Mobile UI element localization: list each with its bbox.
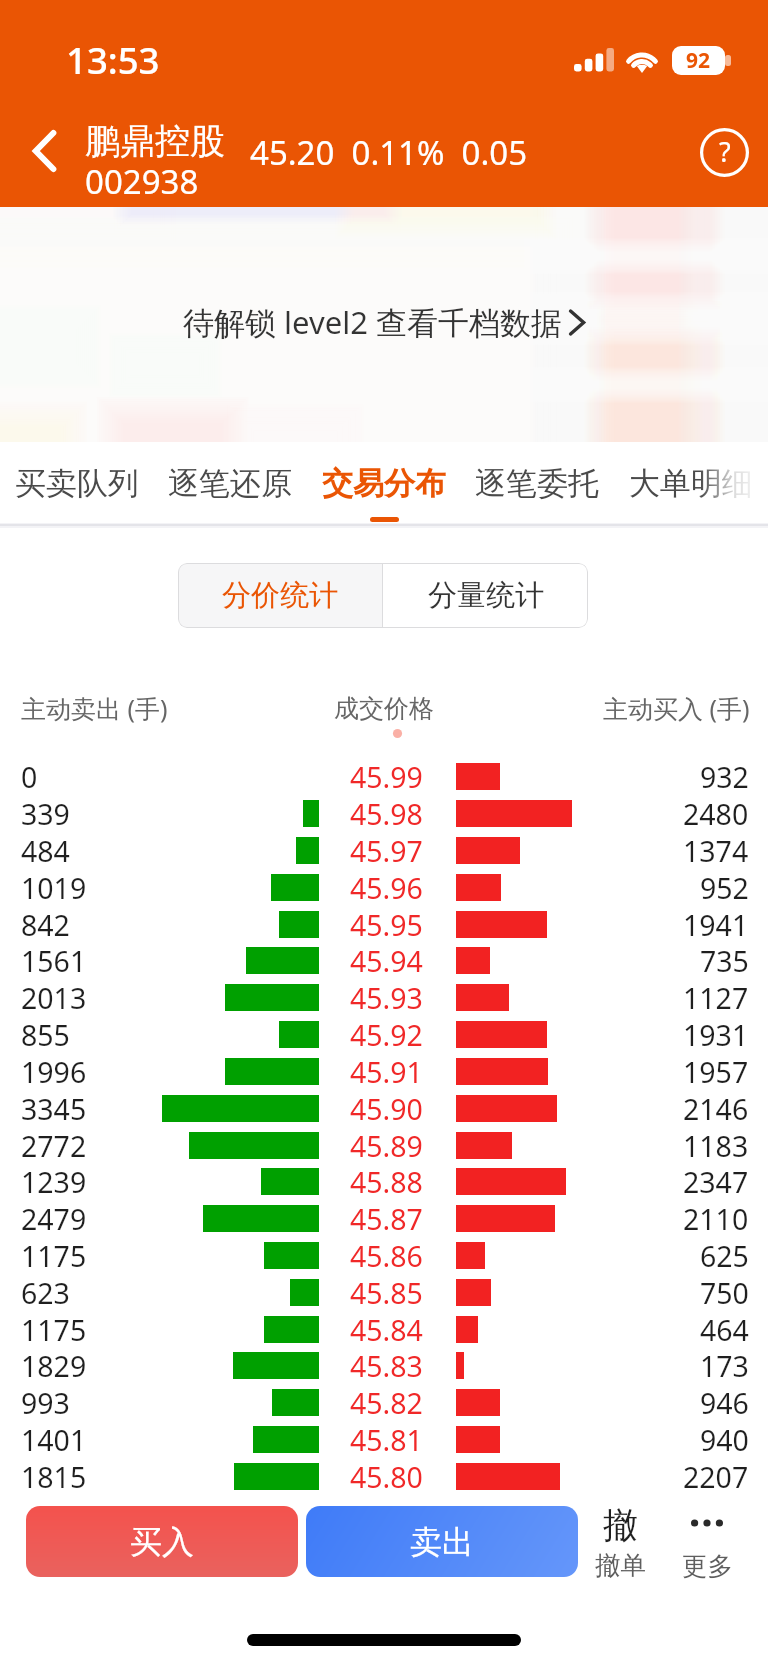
staticText: 1561 (21, 942, 87, 979)
staticText: 1401 (21, 1421, 87, 1458)
button[interactable]: Back (10, 116, 80, 186)
button[interactable]: 分量统计 (383, 563, 588, 628)
button[interactable]: 0 (0, 758, 768, 795)
staticText: 002938 (85, 159, 199, 204)
staticText: 45.88 (350, 1163, 423, 1200)
staticText: 45.95 (350, 906, 423, 943)
staticText: 92 (686, 46, 711, 75)
staticText: 993 (21, 1384, 70, 1421)
button[interactable]: 1401 (0, 1421, 768, 1458)
button[interactable]: 待解锁 level2 查看千档数据 (183, 301, 585, 343)
button[interactable]: 大单明细 (621, 442, 759, 530)
staticText: 932 (700, 758, 749, 795)
button[interactable]: 3345 (0, 1090, 768, 1127)
button[interactable]: 1561 (0, 942, 768, 979)
staticText: 1996 (21, 1053, 87, 1090)
staticText: 45.91 (350, 1053, 423, 1090)
button[interactable]: 484 (0, 832, 768, 869)
staticText: 待解锁 level2 查看千档数据 (183, 301, 562, 343)
staticText: 1941 (683, 906, 749, 943)
button[interactable]: 1996 (0, 1053, 768, 1090)
staticText: 45.93 (350, 979, 423, 1016)
button[interactable]: 623 (0, 1274, 768, 1311)
staticText: 45.89 (350, 1127, 423, 1164)
staticText: 2110 (683, 1200, 749, 1237)
button[interactable]: 1239 (0, 1163, 768, 1200)
button[interactable]: Help (693, 121, 756, 184)
staticText: 952 (700, 869, 749, 906)
button[interactable]: 842 (0, 906, 768, 943)
button[interactable]: 993 (0, 1384, 768, 1421)
staticText: 撤 (603, 1503, 638, 1547)
staticText: 1175 (21, 1237, 87, 1274)
button[interactable]: 2013 (0, 979, 768, 1016)
staticText: 买入 (130, 1522, 194, 1562)
button[interactable]: 分价统计 (178, 563, 382, 628)
staticText: 卖出 (410, 1522, 474, 1562)
button[interactable]: 1175 (0, 1237, 768, 1274)
button[interactable]: 2772 (0, 1127, 768, 1164)
staticText: 买卖队列 (15, 464, 139, 503)
staticText: 1374 (683, 832, 749, 869)
staticText: 45.96 (350, 869, 423, 906)
staticText: 1957 (683, 1053, 749, 1090)
button[interactable]: 339 (0, 795, 768, 832)
button[interactable]: 2479 (0, 1200, 768, 1237)
button[interactable]: 1829 (0, 1347, 768, 1384)
staticText: 45.98 (350, 795, 423, 832)
staticText: 1815 (21, 1458, 87, 1495)
staticText: 45.81 (350, 1421, 423, 1458)
staticText: 484 (21, 832, 70, 869)
button[interactable]: 1175 (0, 1311, 768, 1348)
staticText: 1019 (21, 869, 87, 906)
staticText: 1175 (21, 1311, 87, 1348)
staticText: 45.82 (350, 1384, 423, 1421)
staticText: 173 (700, 1347, 749, 1384)
staticText: 1239 (21, 1163, 87, 1200)
staticText: 2480 (683, 795, 749, 832)
button[interactable]: 撤 (575, 1503, 665, 1581)
button[interactable]: 买入 (26, 1506, 298, 1577)
button[interactable]: 逐笔委托 (467, 442, 605, 530)
button[interactable]: 855 (0, 1016, 768, 1053)
staticText: 主动买入 (手) (603, 691, 750, 725)
staticText: 45.97 (350, 832, 423, 869)
staticText: 分量统计 (428, 577, 544, 614)
staticText: 45.94 (350, 942, 423, 979)
staticText: 1183 (683, 1127, 749, 1164)
staticText: 45.99 (350, 758, 423, 795)
staticText: 842 (21, 906, 70, 943)
staticText: 45.20 0.11% 0.05 (250, 130, 528, 175)
staticText: 分价统计 (222, 577, 338, 614)
staticText: 45.84 (350, 1311, 423, 1348)
staticText: 855 (21, 1016, 70, 1053)
staticText: 45.87 (350, 1200, 423, 1237)
staticText: 940 (700, 1421, 749, 1458)
staticText: 0 (21, 758, 38, 795)
button[interactable]: 买卖队列 (7, 442, 145, 530)
staticText: 成交价格 (334, 693, 434, 724)
staticText: 更多 (682, 1550, 733, 1582)
button[interactable]: 卖出 (306, 1506, 578, 1577)
button[interactable]: 1815 (0, 1458, 768, 1495)
staticText: 2207 (683, 1458, 749, 1495)
staticText: 623 (21, 1274, 70, 1311)
staticText: 45.80 (350, 1458, 423, 1495)
staticText: 45.92 (350, 1016, 423, 1053)
staticText: 1127 (683, 979, 749, 1016)
staticText: 750 (700, 1274, 749, 1311)
staticText: 交易分布 (322, 464, 446, 503)
staticText: 45.85 (350, 1274, 423, 1311)
staticText: 625 (700, 1237, 749, 1274)
staticText: 2013 (21, 979, 87, 1016)
button[interactable]: 1019 (0, 869, 768, 906)
button[interactable]: More (662, 1504, 752, 1582)
staticText: 464 (700, 1311, 749, 1348)
staticText: 2479 (21, 1200, 87, 1237)
staticText: 3345 (21, 1090, 87, 1127)
staticText: 2146 (683, 1090, 749, 1127)
staticText: 45.86 (350, 1237, 423, 1274)
button[interactable]: 逐笔还原 (160, 442, 298, 530)
button[interactable]: 交易分布 (314, 442, 452, 530)
staticText: 2347 (683, 1163, 749, 1200)
